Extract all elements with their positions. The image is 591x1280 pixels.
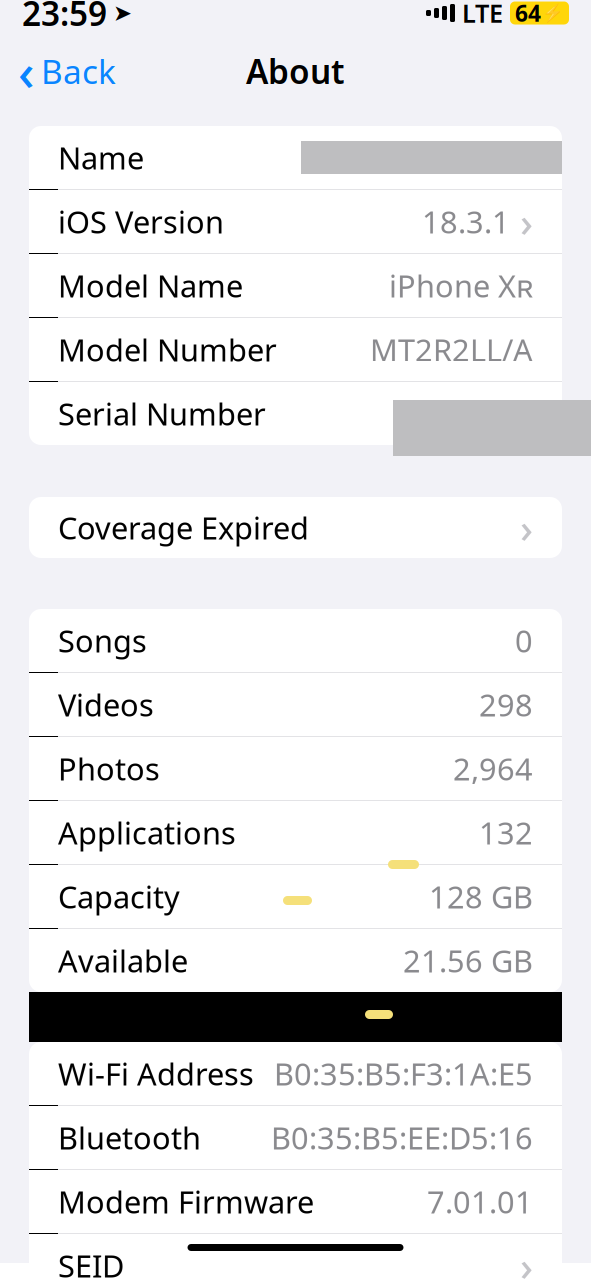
- staticText: Available: [58, 940, 188, 981]
- button[interactable]: Coverage Expired: [29, 497, 562, 558]
- staticText: ➤: [113, 0, 132, 26]
- staticText: ›: [520, 1239, 533, 1280]
- button[interactable]: Applications: [29, 801, 562, 864]
- staticText: 298: [479, 684, 533, 725]
- staticText: iOS Version: [58, 201, 224, 242]
- staticText: B0:35:B5:EE:D5:16: [271, 1117, 533, 1158]
- staticText: Capacity: [58, 876, 180, 917]
- staticText: 132: [479, 812, 533, 853]
- staticText: LTE: [462, 0, 503, 30]
- button[interactable]: Name: [29, 126, 562, 189]
- staticText: 0: [515, 620, 533, 661]
- button[interactable]: SEID: [29, 1234, 562, 1280]
- staticText: FFW: [472, 393, 533, 434]
- staticText: 21.56 GB: [403, 940, 533, 981]
- staticText: 23:59: [22, 0, 107, 35]
- staticText: Videos: [58, 684, 154, 725]
- staticText: Serial Number: [58, 393, 266, 434]
- button[interactable]: Available: [29, 929, 562, 992]
- staticText: Songs: [58, 620, 147, 661]
- staticText: 2,964: [453, 748, 533, 789]
- staticText: B0:35:B5:F3:1A:E5: [274, 1053, 533, 1094]
- button[interactable]: Capacity: [29, 865, 562, 928]
- staticText: Back: [41, 49, 116, 93]
- button[interactable]: Wi-Fi Address: [29, 1042, 562, 1105]
- button[interactable]: Songs: [29, 609, 562, 672]
- staticText: About: [246, 49, 345, 93]
- staticText: MT2R2LL/A: [370, 329, 533, 370]
- staticText: ›: [520, 195, 533, 248]
- staticText: SEID: [58, 1245, 124, 1280]
- staticText: iPhone Xʀ: [389, 265, 533, 306]
- staticText: Wi-Fi Address: [58, 1053, 254, 1094]
- staticText: ›: [520, 501, 533, 554]
- staticText: ‹: [18, 37, 35, 105]
- staticText: 128 GB: [429, 876, 533, 917]
- staticText: Model Name: [58, 265, 243, 306]
- staticText: Applications: [58, 812, 236, 853]
- button[interactable]: Serial Number: [29, 382, 562, 445]
- button[interactable]: Photos: [29, 737, 562, 800]
- staticText: Coverage Expired: [58, 507, 309, 548]
- button[interactable]: Model Number: [29, 318, 562, 381]
- staticText: 18.3.1: [422, 201, 510, 242]
- button[interactable]: ‹: [0, 45, 128, 97]
- button[interactable]: iOS Version: [29, 190, 562, 253]
- staticText: 7.01.01: [427, 1181, 533, 1222]
- button[interactable]: Bluetooth: [29, 1106, 562, 1169]
- staticText: 64: [515, 0, 541, 28]
- staticText: Model Number: [58, 329, 277, 370]
- staticText: Name: [58, 137, 144, 178]
- staticText: Bluetooth: [58, 1117, 201, 1158]
- staticText: ⚡: [542, 3, 564, 23]
- staticText: Photos: [58, 748, 160, 789]
- staticText: Modem Firmware: [58, 1181, 314, 1222]
- button[interactable]: Modem Firmware: [29, 1170, 562, 1233]
- button[interactable]: Model Name: [29, 254, 562, 317]
- button[interactable]: Videos: [29, 673, 562, 736]
